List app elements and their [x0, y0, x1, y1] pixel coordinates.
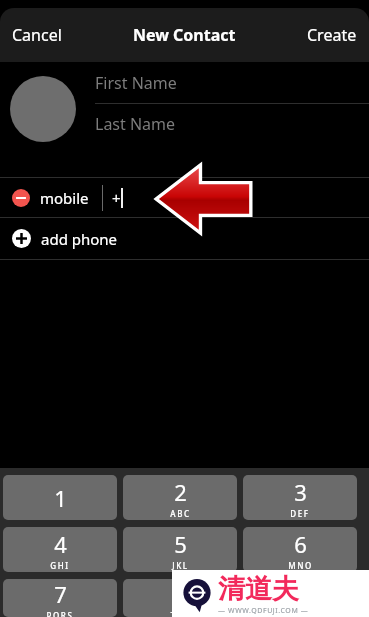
- staticText: 6: [294, 529, 307, 559]
- staticText: 清道夫: [218, 572, 299, 606]
- other: Remove phone: [12, 189, 30, 207]
- staticText: DEF: [290, 508, 310, 519]
- staticText: 9: [294, 579, 307, 609]
- other: Add phone: [12, 229, 31, 248]
- button[interactable]: Cancel: [0, 14, 74, 56]
- staticText: 5: [174, 529, 187, 559]
- button[interactable]: 4: [3, 527, 117, 572]
- button[interactable]: Add photo: [10, 76, 76, 142]
- staticText: add phone: [41, 229, 118, 249]
- button[interactable]: 2: [123, 475, 237, 520]
- button[interactable]: 1: [3, 475, 117, 520]
- button[interactable]: Last Name: [95, 104, 369, 144]
- staticText: 1: [54, 483, 67, 513]
- button[interactable]: Create: [295, 14, 369, 56]
- button[interactable]: First Name: [95, 62, 369, 103]
- staticText: ABC: [170, 508, 191, 519]
- button[interactable]: 8: [123, 579, 237, 617]
- button[interactable]: 6: [243, 527, 357, 572]
- staticText: +: [112, 188, 121, 208]
- staticText: JKL: [172, 560, 189, 571]
- staticText: GHI: [50, 560, 70, 571]
- staticText: — WWW.QDFUJI.COM —: [218, 606, 309, 616]
- staticText: WXYZ: [286, 610, 315, 617]
- staticText: MNO: [288, 560, 313, 571]
- staticText: TUV: [170, 610, 191, 617]
- staticText: First Name: [95, 72, 177, 94]
- staticText: 8: [174, 579, 187, 609]
- staticText: 7: [54, 579, 67, 609]
- staticText: New Contact: [133, 24, 236, 46]
- button[interactable]: Add phone: [0, 218, 369, 259]
- staticText: 4: [54, 529, 67, 559]
- button[interactable]: Remove phone: [0, 178, 369, 217]
- button[interactable]: 7: [3, 579, 117, 617]
- staticText: Last Name: [95, 113, 176, 135]
- staticText: Create: [307, 24, 357, 46]
- button[interactable]: 3: [243, 475, 357, 520]
- staticText: 3: [294, 477, 307, 507]
- staticText: mobile: [40, 188, 89, 208]
- button[interactable]: 5: [123, 527, 237, 572]
- button[interactable]: 9: [243, 579, 357, 617]
- staticText: PQRS: [46, 610, 74, 617]
- staticText: Cancel: [12, 24, 62, 46]
- staticText: 2: [174, 477, 187, 507]
